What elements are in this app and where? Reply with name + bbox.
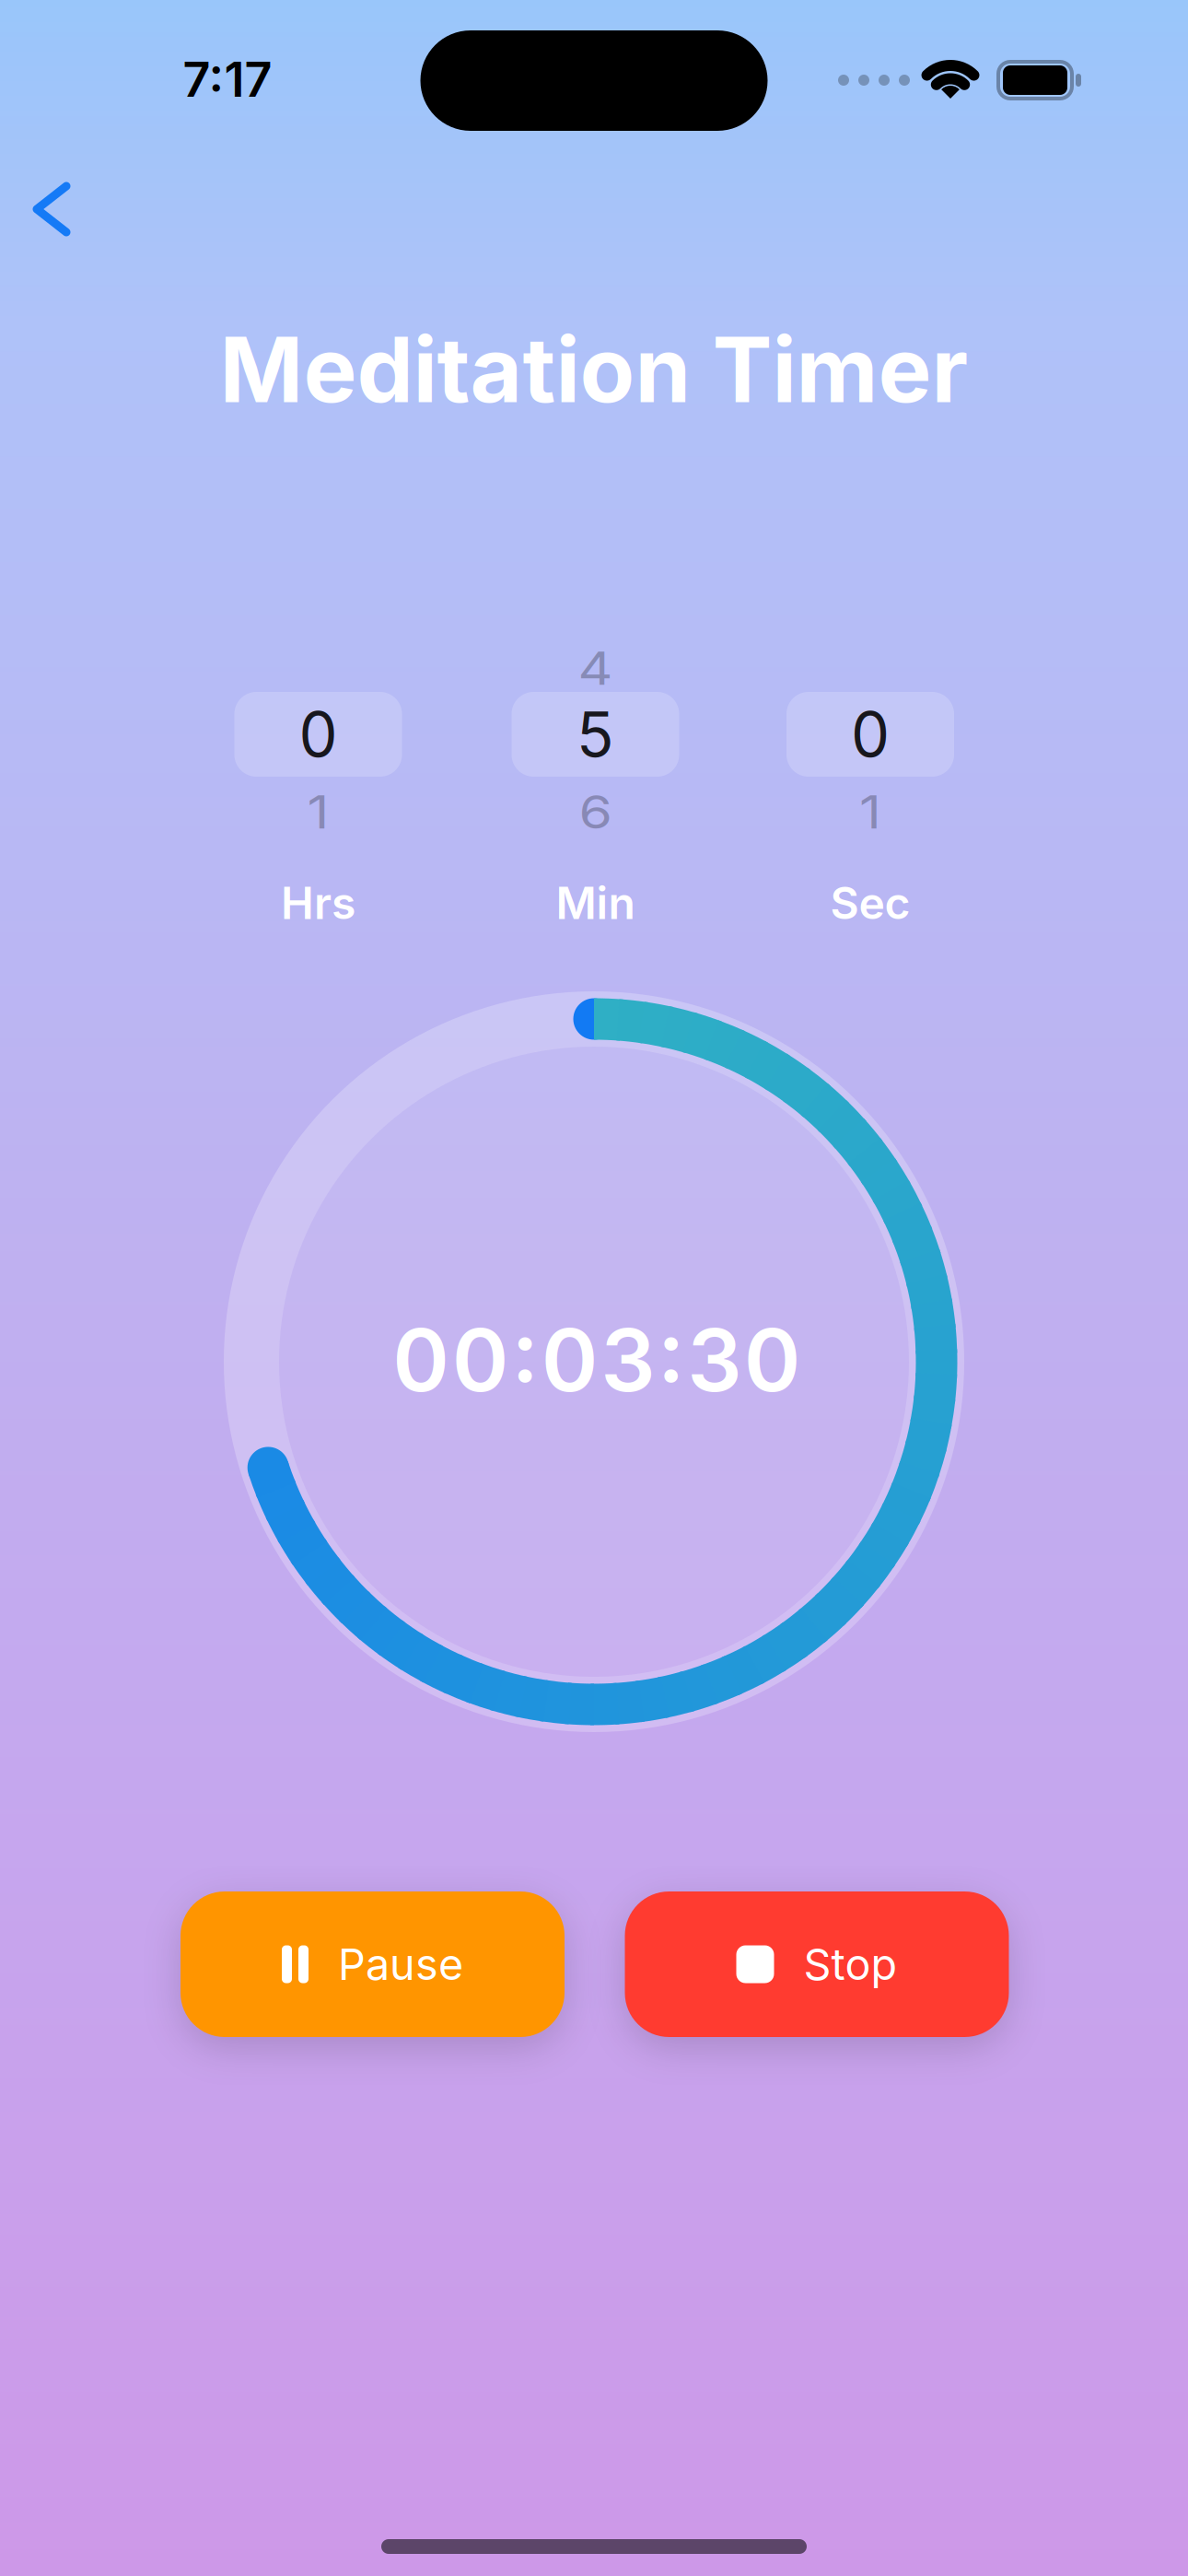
staticText: 00:03:30 <box>393 1309 801 1411</box>
staticText: Stop <box>804 1939 897 1990</box>
staticText: 0 <box>299 698 338 770</box>
staticText: 1 <box>307 780 329 844</box>
staticText: 1 <box>859 780 881 844</box>
staticText: 6 <box>579 780 612 844</box>
button[interactable]: Stop <box>625 1891 1009 2037</box>
staticText: Pause <box>338 1939 463 1990</box>
button[interactable]: Pause <box>181 1891 565 2037</box>
button[interactable]: Back <box>20 170 83 249</box>
button[interactable]: Hours picker <box>234 631 402 843</box>
staticText: Meditation Timer <box>220 317 968 422</box>
staticText: Hrs <box>281 877 355 929</box>
staticText: Sec <box>830 877 910 929</box>
button[interactable]: Minutes picker <box>512 631 679 843</box>
staticText: Min <box>556 877 635 929</box>
staticText: 4 <box>578 636 613 700</box>
staticText: 0 <box>851 698 890 770</box>
staticText: 7:17 <box>183 51 272 107</box>
staticText: 5 <box>577 698 614 770</box>
button[interactable]: Seconds picker <box>786 631 954 843</box>
